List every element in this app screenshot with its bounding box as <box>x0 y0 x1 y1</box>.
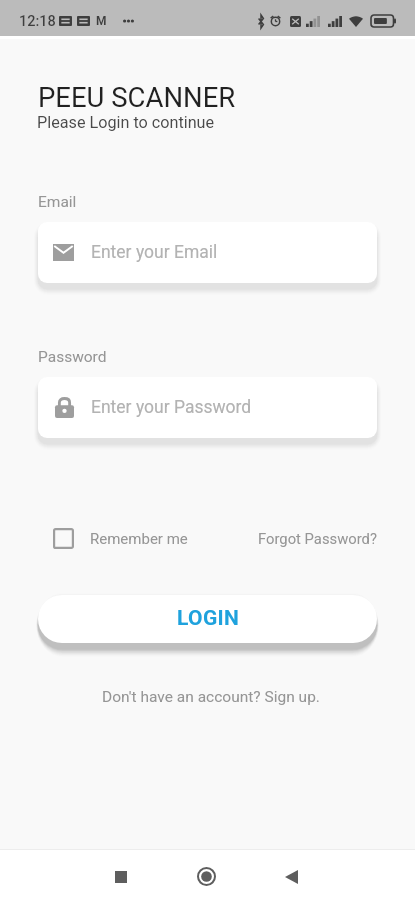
staticText: Enter your Password <box>91 397 252 418</box>
button[interactable]: Don't have an account? Sign up. <box>102 688 320 706</box>
staticText: Enter your Email <box>91 242 218 263</box>
button[interactable]: Back <box>263 851 320 900</box>
staticText: LOGIN <box>177 606 240 631</box>
staticText: Password <box>38 348 107 366</box>
staticText: Remember me <box>90 530 188 548</box>
button[interactable]: Home <box>178 851 235 900</box>
staticText: M <box>96 14 107 28</box>
staticText: 12:18 <box>19 13 56 30</box>
staticText: Please Login to continue <box>37 113 215 132</box>
button[interactable]: Enter your Password <box>38 377 377 438</box>
staticText: Email <box>38 193 77 211</box>
button[interactable]: Remember me <box>53 528 188 549</box>
staticText: PEEU SCANNER <box>38 81 236 113</box>
button[interactable]: LOGIN <box>38 595 377 643</box>
button[interactable]: Recents <box>92 851 149 900</box>
button[interactable]: Forgot Password? <box>258 530 377 547</box>
button[interactable]: Enter your Email <box>38 222 377 283</box>
